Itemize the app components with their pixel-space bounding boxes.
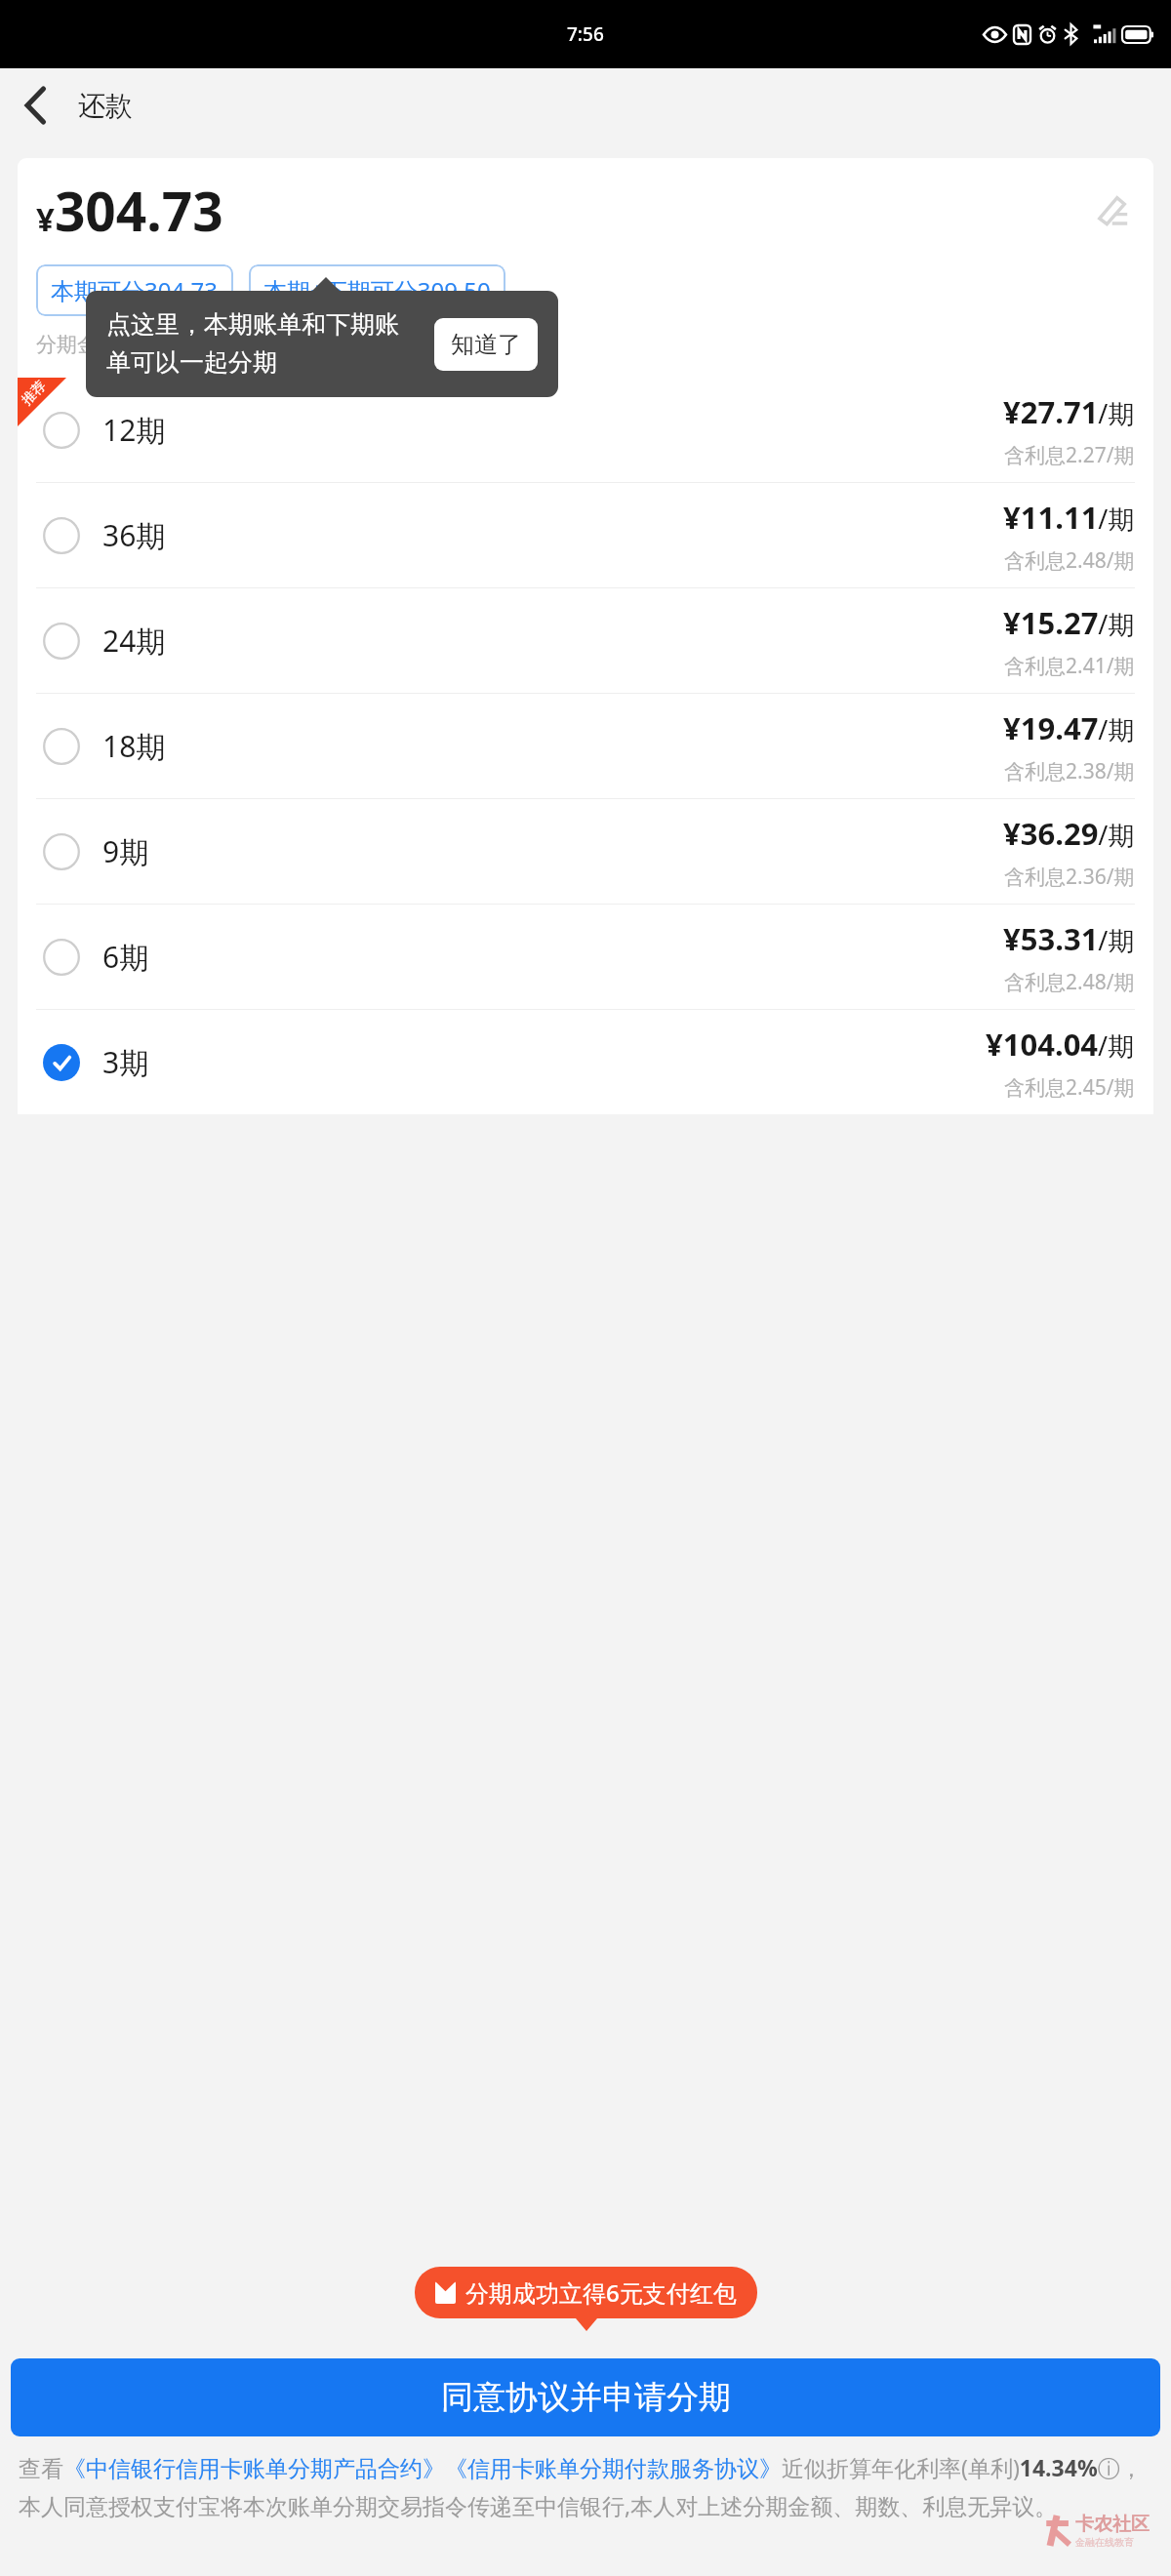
staticText: 36期 [102, 515, 166, 555]
staticText: 分期成功立得6元支付红包 [465, 2276, 737, 2309]
staticText: 含利息2.36/期 [1004, 863, 1135, 891]
staticText: 同意协议并申请分期 [441, 2377, 731, 2418]
staticText: 含利息2.38/期 [1004, 757, 1135, 785]
staticText: ¥36.29/期 [1003, 813, 1135, 854]
button[interactable]: 9期 [18, 799, 1153, 904]
staticText: 24期 [102, 621, 166, 661]
button[interactable]: 36期 [18, 483, 1153, 587]
button[interactable]: 本期可分304.73 [36, 264, 233, 316]
button[interactable]: 3期 [18, 1010, 1153, 1114]
staticText: 含利息2.41/期 [1004, 652, 1135, 680]
staticText: 本期可分304.73 [51, 274, 219, 306]
button[interactable]: 24期 [18, 588, 1153, 693]
button[interactable]: 编辑金额 [1085, 184, 1138, 237]
staticText: 本期+下期可分309.50 [263, 274, 491, 306]
staticText: ¥27.71/期 [1003, 391, 1135, 432]
staticText: 卡农社区 [1075, 2513, 1150, 2536]
staticText: ¥304.73 [36, 174, 223, 247]
button[interactable]: 返回 [7, 77, 63, 134]
staticText: ¥11.11/期 [1003, 497, 1135, 538]
staticText: 3期 [102, 1042, 149, 1082]
staticText: 18期 [102, 726, 166, 766]
staticText: ¥104.04/期 [986, 1024, 1135, 1065]
staticText: 12期 [102, 410, 166, 450]
button[interactable]: 本期+下期可分309.50 [249, 264, 505, 316]
staticText: 含利息2.48/期 [1004, 968, 1135, 996]
staticText: 7:56 [567, 21, 604, 47]
button[interactable]: 同意协议并申请分期 [11, 2358, 1160, 2436]
staticText: 分期金额含本期账单304.73 下期账单0.00 [36, 330, 424, 358]
staticText: ¥15.27/期 [1003, 602, 1135, 643]
button[interactable]: 18期 [18, 694, 1153, 798]
button[interactable]: 12期 [18, 378, 1153, 482]
staticText: 含利息2.48/期 [1004, 546, 1135, 575]
staticText: 金融在线教育 [1075, 2536, 1134, 2549]
staticText: 还款 [78, 89, 133, 123]
button[interactable]: 知道了 [434, 318, 538, 371]
staticText: 查看《中信银行信用卡账单分期产品合约》《信用卡账单分期付款服务协议》近似折算年化… [19, 2452, 1152, 2521]
button[interactable]: 6期 [18, 905, 1153, 1009]
staticText: 含利息2.27/期 [1004, 441, 1135, 469]
staticText: 推荐 [18, 377, 50, 409]
staticText: 9期 [102, 831, 149, 871]
staticText: ¥53.31/期 [1003, 918, 1135, 959]
staticText: 知道了 [451, 330, 521, 359]
staticText: ¥19.47/期 [1003, 707, 1135, 748]
staticText: 6期 [102, 937, 149, 977]
staticText: 点这里，本期账单和下期账单可以一起分期 [106, 309, 421, 379]
button[interactable]: 分期成功立得6元支付红包 [415, 2267, 757, 2318]
staticText: 含利息2.45/期 [1004, 1073, 1135, 1102]
